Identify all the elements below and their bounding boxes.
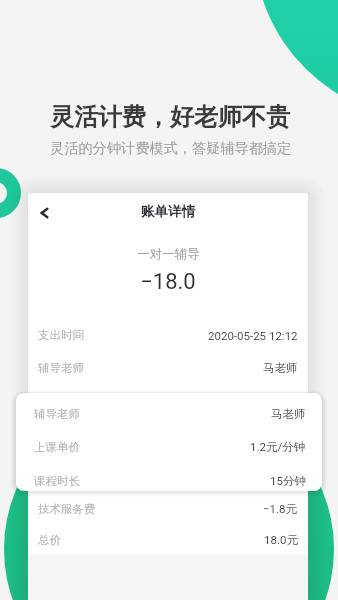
staticText: 灵活的分钟计费模式，答疑辅导都搞定 [50, 139, 292, 157]
staticText: 一对一辅导 [137, 246, 200, 262]
staticText: 灵活计费，好老师不贵 [50, 102, 290, 132]
staticText: 辅导老师 [38, 361, 84, 375]
staticText: 课程时长 [34, 474, 80, 488]
staticText: 18.0元 [264, 533, 298, 547]
button[interactable]: 上课单价 [16, 434, 322, 460]
staticText: 总价 [38, 533, 61, 547]
staticText: 马老师 [271, 407, 306, 421]
staticText: 1.2元/分钟 [250, 440, 306, 454]
staticText: 2020-05-25 12:12 [208, 329, 298, 342]
button[interactable]: 辅导老师 [16, 401, 322, 427]
staticText: 账单详情 [141, 203, 195, 220]
staticText: −1.8元 [263, 502, 298, 516]
staticText: 上课单价 [34, 440, 80, 454]
button[interactable]: 技术服务费 [28, 496, 308, 522]
button[interactable]: 辅导老师 [28, 355, 308, 381]
button[interactable]: 总价 [28, 527, 308, 553]
button[interactable]: 支出时间 [28, 322, 308, 348]
staticText: −18.0 [140, 269, 196, 295]
staticText: 技术服务费 [38, 502, 96, 516]
button[interactable]: Back [30, 199, 58, 227]
staticText: 支出时间 [38, 328, 84, 342]
staticText: 马老师 [263, 361, 298, 375]
staticText: 15分钟 [270, 474, 306, 488]
button[interactable]: 课程时长 [16, 468, 322, 491]
staticText: 辅导老师 [34, 407, 80, 421]
